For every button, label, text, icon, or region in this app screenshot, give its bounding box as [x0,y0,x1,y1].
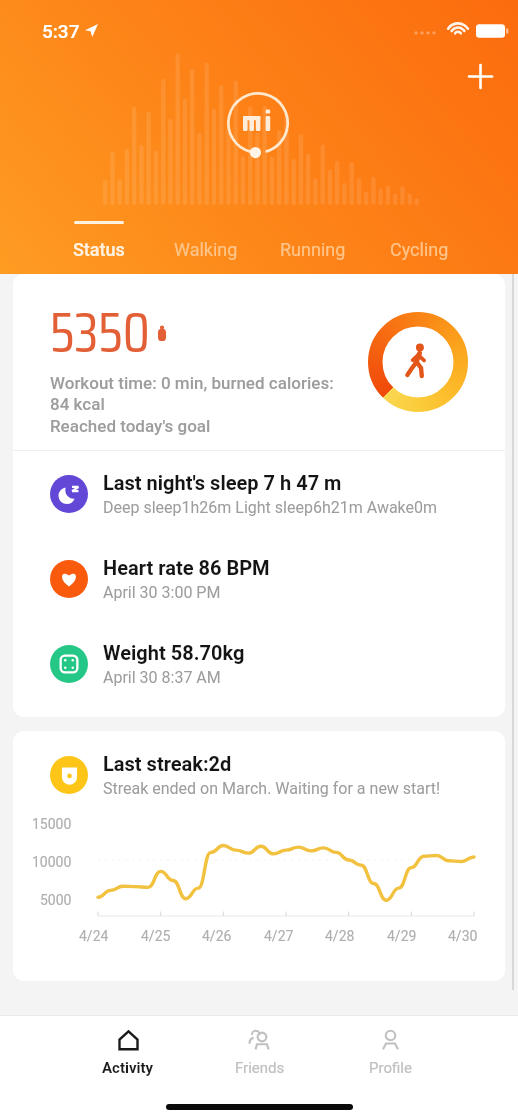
staticText: Last night's sleep 7 h 47 m [103,471,342,494]
button[interactable]: 5350 [13,274,505,450]
staticText: 5:37 [42,20,80,42]
staticText: 5350 [50,288,150,376]
staticText: Status [73,239,125,260]
staticText: Walking [174,239,238,260]
button[interactable]: Walking [152,206,259,274]
button[interactable]: Last streak:2d [13,731,505,981]
staticText: Running [280,239,346,260]
button[interactable]: Cycling [366,206,473,274]
staticText: Cycling [390,239,449,260]
button[interactable]: Last night's sleep 7 h 47 m [13,451,505,536]
button[interactable]: Activity [62,1016,194,1078]
staticText: 4/24 [79,928,109,944]
staticText: Streak ended on March. Waiting for a new… [103,779,441,798]
staticText: Profile [369,1059,412,1077]
button[interactable]: Add [458,54,502,98]
staticText: 15000 [32,816,72,832]
staticText: 10000 [32,854,72,870]
staticText: Activity [102,1059,154,1077]
button[interactable]: Running [259,206,366,274]
staticText: Friends [235,1059,285,1077]
staticText: 4/26 [202,928,232,944]
staticText: 4/27 [264,928,294,944]
staticText: Last streak:2d [103,752,232,775]
staticText: Reached today's goal [50,416,211,436]
staticText: Weight 58.70kg [103,641,245,664]
staticText: 4/28 [325,928,355,944]
staticText: 4/29 [387,928,417,944]
staticText: April 30 8:37 AM [103,668,221,687]
button[interactable]: Weight 58.70kg [13,621,505,706]
button[interactable]: Heart rate 86 BPM [13,536,505,621]
staticText: 4/25 [141,928,171,944]
button[interactable]: Friends [194,1016,325,1078]
staticText: 5000 [40,892,72,908]
staticText: Heart rate 86 BPM [103,556,270,579]
button[interactable]: Profile [325,1016,456,1078]
staticText: April 30 3:00 PM [103,583,221,602]
staticText: Deep sleep1h26m Light sleep6h21m Awake0m [103,498,438,517]
staticText: 4/30 [448,928,478,944]
staticText: Workout time: 0 min, burned calories: 84… [50,373,334,414]
button[interactable]: Mi band [227,92,289,154]
button[interactable]: Status [45,206,152,274]
